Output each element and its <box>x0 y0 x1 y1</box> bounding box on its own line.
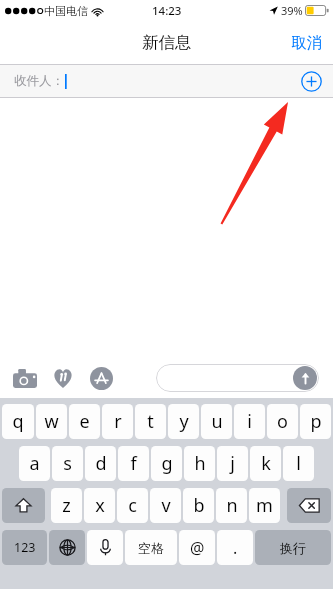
staticText: u <box>211 409 223 434</box>
staticText: y <box>179 409 189 434</box>
staticText: w <box>44 409 59 434</box>
staticText: g <box>161 451 173 476</box>
button[interactable]: s <box>52 446 83 481</box>
button[interactable]: i <box>234 404 265 439</box>
button[interactable]: 123 <box>2 530 47 565</box>
staticText: 新信息 <box>142 32 192 53</box>
staticText: k <box>261 451 271 476</box>
button[interactable]: r <box>102 404 133 439</box>
button[interactable]: c <box>117 488 148 523</box>
button[interactable]: q <box>2 404 34 439</box>
button[interactable]: 空格 <box>125 530 177 565</box>
staticText: f <box>130 451 137 476</box>
button[interactable]: j <box>217 446 248 481</box>
button[interactable]: 取消 <box>280 25 333 61</box>
button[interactable]: x <box>84 488 115 523</box>
staticText: 39% <box>281 3 303 18</box>
staticText: x <box>95 493 105 518</box>
staticText: 取消 <box>291 33 322 53</box>
staticText: 123 <box>14 539 36 556</box>
button[interactable]: l <box>283 446 314 481</box>
staticText: l <box>296 451 301 476</box>
button[interactable]: m <box>249 488 280 523</box>
staticText: p <box>310 409 322 434</box>
button[interactable]: y <box>168 404 199 439</box>
button[interactable]: Backspace <box>287 488 331 523</box>
staticText: a <box>29 451 40 476</box>
staticText: h <box>194 451 206 476</box>
button[interactable]: k <box>250 446 281 481</box>
staticText: s <box>63 451 72 476</box>
button[interactable]: h <box>184 446 215 481</box>
staticText: e <box>79 409 90 434</box>
staticText: j <box>230 451 235 476</box>
staticText: v <box>161 493 171 518</box>
staticText: n <box>226 493 238 518</box>
staticText: t <box>147 409 154 434</box>
button[interactable]: Shift <box>2 488 45 523</box>
button[interactable]: v <box>150 488 181 523</box>
staticText: m <box>256 493 273 518</box>
staticText: 空格 <box>138 540 164 556</box>
staticText: r <box>114 409 122 434</box>
button[interactable]: Send <box>156 364 319 392</box>
staticText: d <box>95 451 107 476</box>
staticText: c <box>128 493 137 518</box>
staticText: @ <box>190 537 205 559</box>
staticText: 14:23 <box>152 3 182 19</box>
staticText: 中国电信 <box>44 4 88 18</box>
staticText: b <box>193 493 205 518</box>
button[interactable]: n <box>216 488 247 523</box>
staticText: o <box>277 409 288 434</box>
button[interactable]: Digital Touch <box>48 363 78 393</box>
button[interactable]: u <box>201 404 232 439</box>
button[interactable]: f <box>118 446 149 481</box>
button[interactable]: 换行 <box>255 530 331 565</box>
staticText: 收件人： <box>14 73 64 89</box>
button[interactable]: Dictation <box>87 530 123 565</box>
button[interactable]: Add contact <box>297 67 325 95</box>
button[interactable]: w <box>36 404 67 439</box>
button[interactable]: Send <box>293 366 317 390</box>
button[interactable]: t <box>135 404 166 439</box>
button[interactable]: p <box>300 404 331 439</box>
button[interactable]: g <box>151 446 182 481</box>
staticText: 换行 <box>280 540 306 556</box>
staticText: z <box>62 493 71 518</box>
button[interactable]: Camera <box>10 363 40 393</box>
button[interactable]: d <box>85 446 116 481</box>
button[interactable]: z <box>51 488 82 523</box>
button[interactable]: App Store <box>86 363 116 393</box>
button[interactable]: Switch keyboard <box>49 530 85 565</box>
button[interactable]: . <box>217 530 253 565</box>
staticText: q <box>12 409 24 434</box>
button[interactable]: o <box>267 404 298 439</box>
button[interactable]: e <box>69 404 100 439</box>
button[interactable]: b <box>183 488 214 523</box>
staticText: . <box>233 537 238 559</box>
staticText: i <box>247 409 252 434</box>
button[interactable]: @ <box>179 530 215 565</box>
button[interactable]: a <box>19 446 50 481</box>
